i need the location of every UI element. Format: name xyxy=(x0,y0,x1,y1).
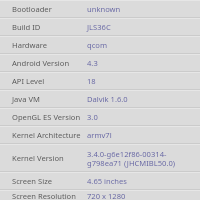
staticText: 18 xyxy=(87,76,194,86)
staticText: Dalvik 1.6.0 xyxy=(87,94,194,104)
staticText: API Level xyxy=(12,76,87,86)
button[interactable]: Screen Size xyxy=(0,172,200,190)
staticText: Kernel Architecture xyxy=(12,130,87,140)
staticText: 3.0 xyxy=(87,112,194,122)
staticText: 3.4.0-g6e12f86-00314-g798ea71 (JHCMIBL50… xyxy=(87,149,194,168)
staticText: Build ID xyxy=(12,22,87,32)
staticText: 720 x 1280 xyxy=(87,191,194,200)
button[interactable]: Android Version xyxy=(0,54,200,72)
staticText: Java VM xyxy=(12,94,87,104)
staticText: armv7l xyxy=(87,130,194,140)
staticText: Screen Resolution (pixels) xyxy=(12,191,87,200)
staticText: Android Version xyxy=(12,58,87,68)
button[interactable]: Kernel Version xyxy=(0,144,200,172)
button[interactable]: Screen Resolution (pixels) xyxy=(0,190,200,200)
button[interactable]: Java VM xyxy=(0,90,200,108)
staticText: 4.3 xyxy=(87,58,194,68)
staticText: JLS36C xyxy=(87,22,194,32)
button[interactable]: Hardware xyxy=(0,36,200,54)
staticText: OpenGL ES Version xyxy=(12,112,87,122)
button[interactable]: OpenGL ES Version xyxy=(0,108,200,126)
staticText: Kernel Version xyxy=(12,153,87,163)
staticText: Hardware xyxy=(12,40,87,50)
staticText: unknown xyxy=(87,4,194,14)
staticText: 4.65 inches xyxy=(87,176,194,186)
staticText: Bootloader xyxy=(12,4,87,14)
staticText: Screen Size xyxy=(12,176,87,186)
button[interactable]: Bootloader xyxy=(0,0,200,18)
button[interactable]: Kernel Architecture xyxy=(0,126,200,144)
button[interactable]: Build ID xyxy=(0,18,200,36)
button[interactable]: API Level xyxy=(0,72,200,90)
staticText: qcom xyxy=(87,40,194,50)
